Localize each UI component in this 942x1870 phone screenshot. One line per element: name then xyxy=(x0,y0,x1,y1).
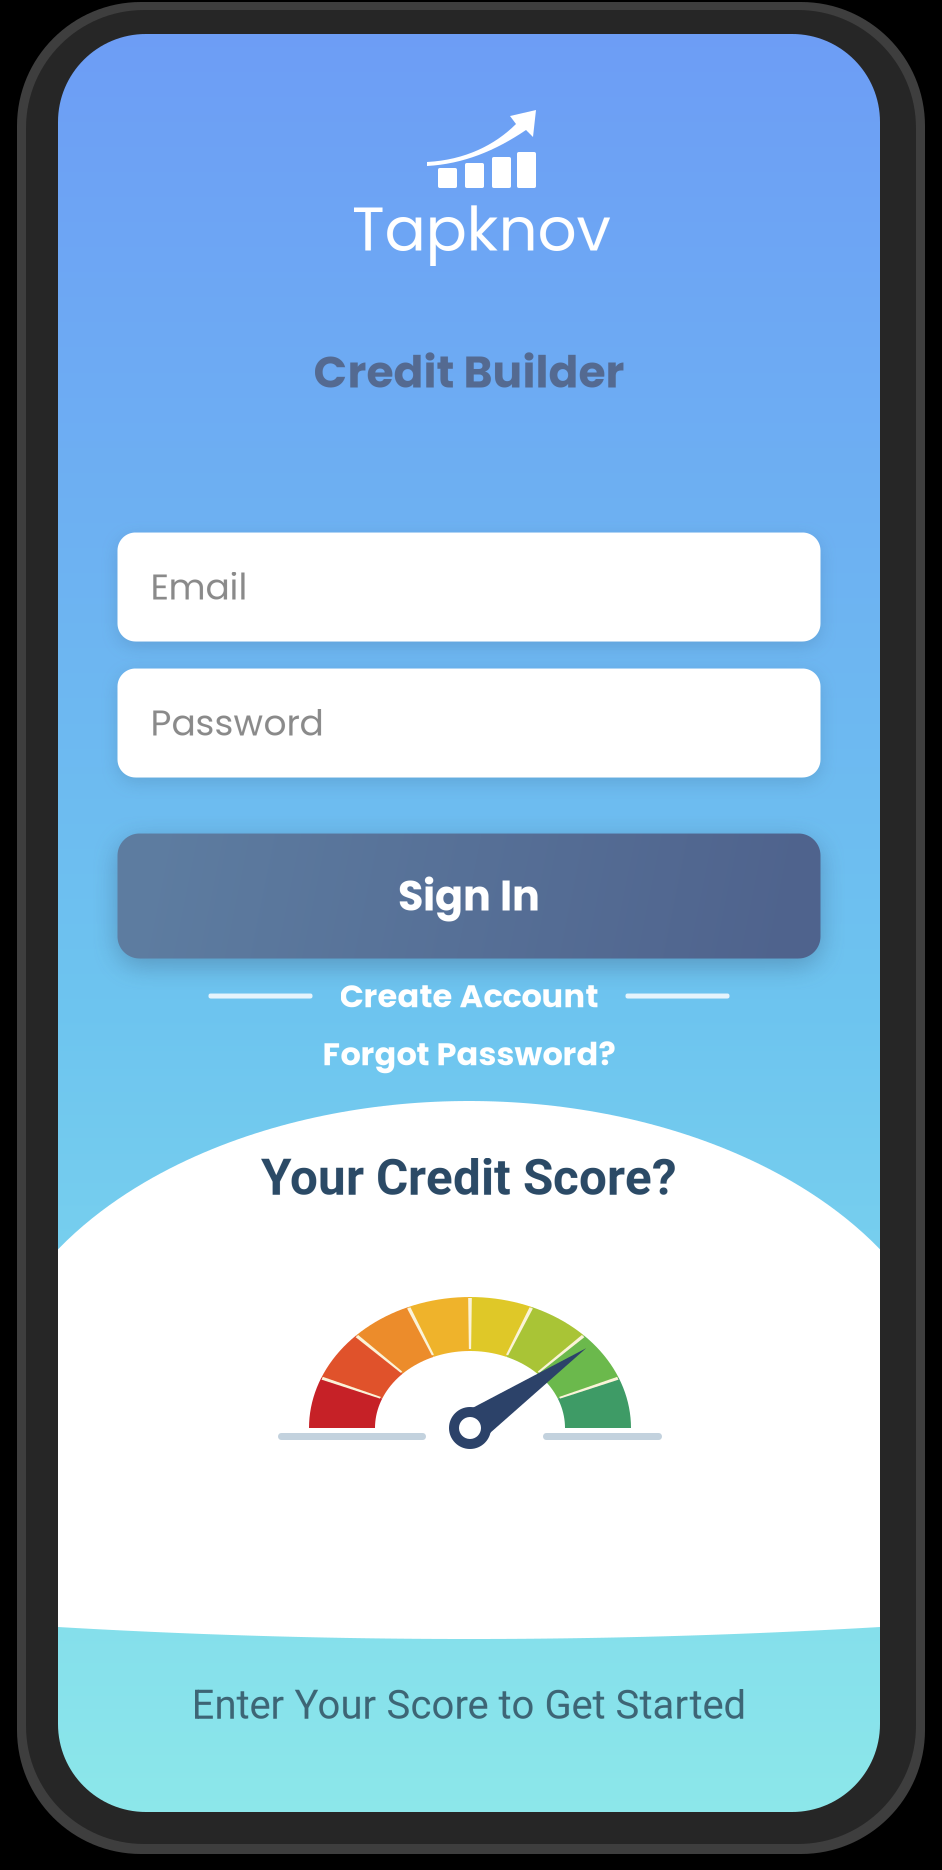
button[interactable]: Sign In xyxy=(117,833,820,958)
staticText: Email xyxy=(150,562,247,612)
staticText: Tapknov xyxy=(351,186,610,272)
staticText: Credit Builder xyxy=(313,341,624,403)
button[interactable]: Password xyxy=(117,668,820,777)
staticText: Forgot Password? xyxy=(322,1032,615,1076)
staticText: Create Account xyxy=(339,974,598,1018)
staticText: Your Credit Score? xyxy=(261,1149,677,1207)
button[interactable]: Email xyxy=(117,532,820,641)
button[interactable]: Forgot Password? xyxy=(322,1032,615,1076)
button[interactable]: Create Account xyxy=(339,974,598,1018)
staticText: Enter Your Score to Get Started xyxy=(191,1682,746,1728)
staticText: Password xyxy=(150,698,323,748)
staticText: Sign In xyxy=(398,867,540,925)
